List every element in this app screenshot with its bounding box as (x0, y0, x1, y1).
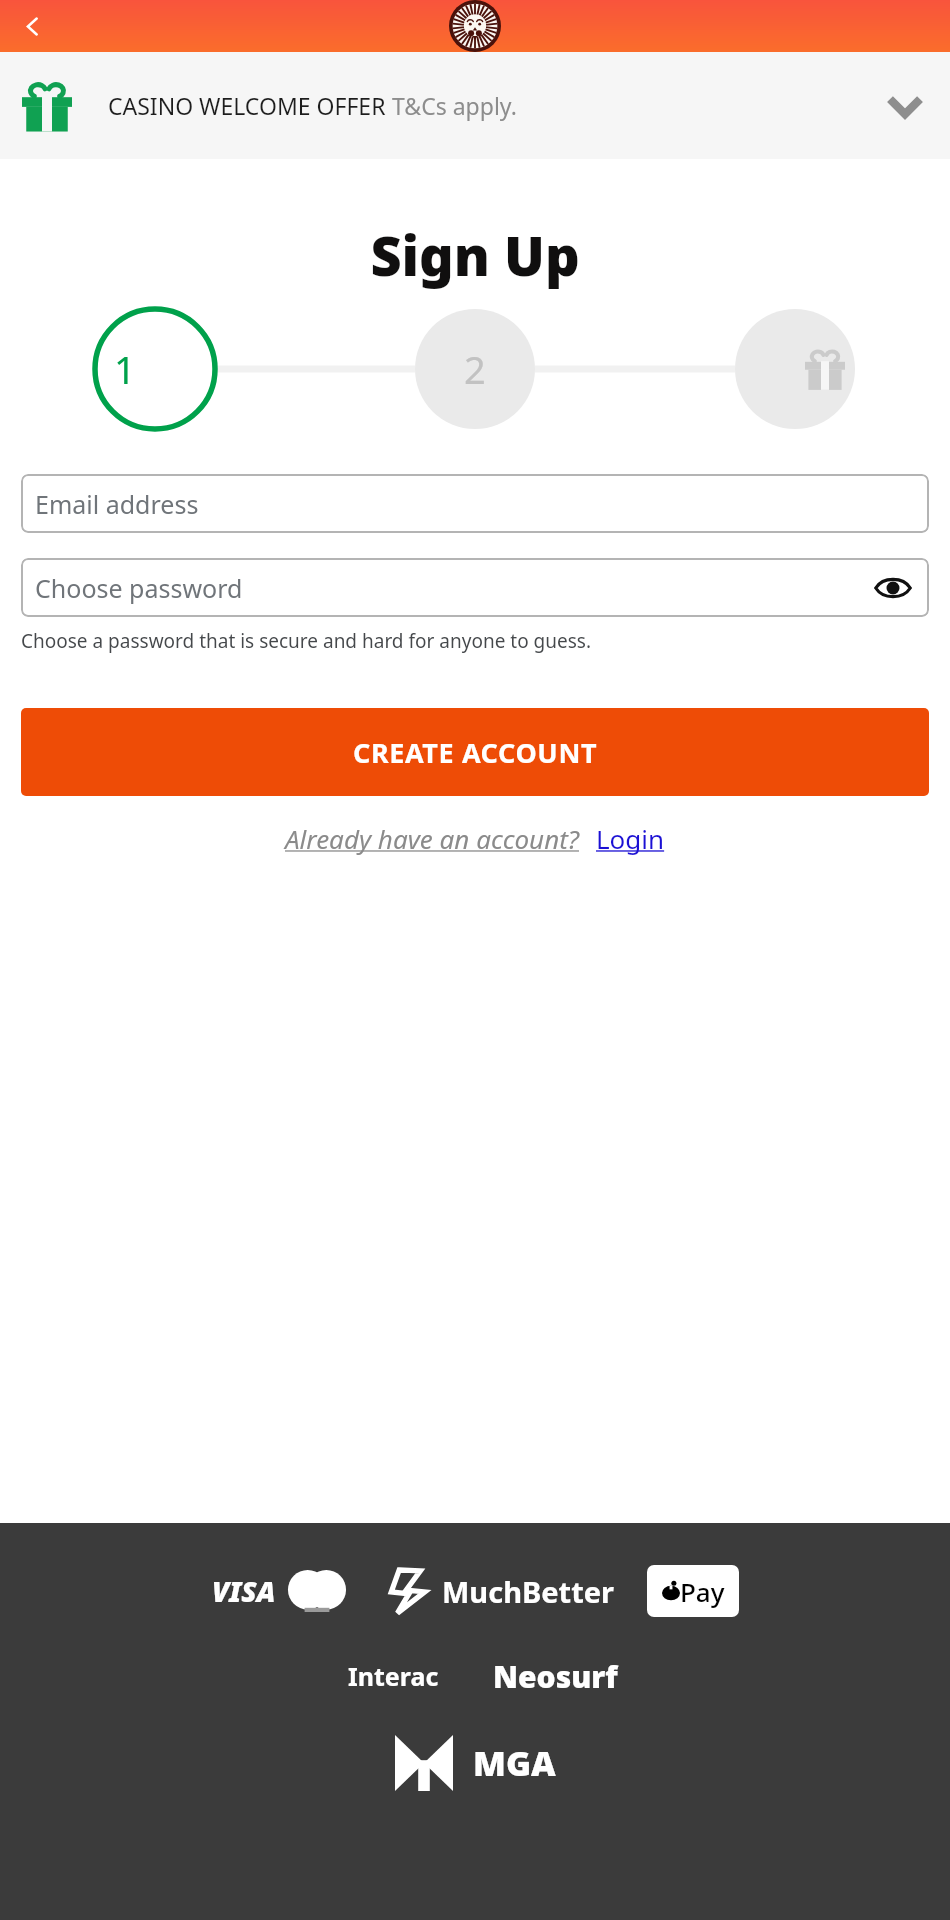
button[interactable]: Bonus step (794, 338, 856, 400)
button[interactable]: CASINO WELCOME OFFER (0, 52, 950, 159)
other: Expand offer (882, 83, 928, 129)
button[interactable]: LeoVegas logo (449, 0, 501, 52)
staticText: Choose a password that is secure and har… (21, 628, 592, 654)
staticText: Sign Up (0, 218, 950, 292)
staticText: 2 (464, 343, 486, 395)
staticText: MuchBetter (442, 1572, 615, 1611)
button[interactable]: 2 (444, 338, 506, 400)
button[interactable]: 1 (94, 338, 156, 400)
staticText: Email address (35, 487, 199, 521)
staticText: MGA (473, 1740, 556, 1786)
staticText: Already have an account? (285, 821, 580, 856)
button[interactable]: CREATE ACCOUNT (21, 708, 929, 796)
staticText: Pay (680, 1574, 725, 1609)
staticText: T&Cs apply. (392, 90, 517, 121)
button[interactable]: Back (11, 5, 53, 47)
staticText: 1 (114, 343, 136, 395)
staticText: CREATE ACCOUNT (353, 734, 598, 771)
button[interactable]: Email address (21, 474, 929, 533)
button[interactable]: Login (596, 821, 665, 856)
button[interactable]: Already have an account? (285, 821, 580, 856)
staticText: VISA (212, 1572, 276, 1610)
staticText: Choose password (35, 571, 243, 605)
button[interactable]: Choose password (21, 558, 929, 617)
button[interactable]: Show password (871, 566, 915, 610)
staticText: Login (596, 821, 665, 856)
staticText: CASINO WELCOME OFFER (108, 90, 392, 121)
staticText: Interac (348, 1659, 439, 1693)
staticText: Neosurf (493, 1656, 618, 1697)
